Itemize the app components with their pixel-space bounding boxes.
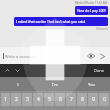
button[interactable]: 3 bbox=[22, 93, 32, 106]
button[interactable]: Attach bbox=[86, 51, 96, 61]
staticText: I bbox=[17, 82, 19, 87]
button[interactable]: 0 bbox=[99, 93, 109, 106]
staticText: Write a message... bbox=[5, 54, 40, 59]
button[interactable]: 5 bbox=[44, 93, 54, 106]
button[interactable]: Done bbox=[92, 67, 107, 74]
button[interactable]: Send bbox=[97, 51, 107, 61]
button[interactable]: How do I pay $20? bbox=[75, 6, 108, 15]
button[interactable]: 1 bbox=[1, 93, 10, 106]
staticText: Mitchell Harris 11:33 AM bbox=[75, 1, 108, 5]
staticText: 2 bbox=[15, 96, 18, 103]
button[interactable]: 4 bbox=[33, 93, 43, 106]
staticText: You bbox=[88, 82, 95, 87]
staticText: 8 bbox=[81, 96, 84, 103]
button[interactable]: I asked that earlier. That isn't what yo… bbox=[14, 17, 108, 26]
button[interactable]: Next bbox=[13, 66, 22, 75]
button[interactable]: I bbox=[0, 77, 36, 91]
button[interactable]: You bbox=[73, 77, 110, 91]
staticText: 7 bbox=[70, 96, 73, 103]
staticText: 0 bbox=[103, 96, 106, 103]
staticText: 9 bbox=[92, 96, 95, 103]
button[interactable]: 2 bbox=[11, 93, 21, 106]
button[interactable]: I'm bbox=[36, 77, 73, 91]
button[interactable]: Previous bbox=[3, 66, 12, 75]
staticText: I asked that earlier. That isn't what yo… bbox=[16, 19, 86, 24]
staticText: 4 bbox=[37, 96, 40, 103]
staticText: How do I pay $20? bbox=[77, 8, 106, 13]
button[interactable]: Write a message... bbox=[3, 53, 86, 59]
button[interactable]: 7 bbox=[66, 93, 76, 106]
staticText: I'm bbox=[52, 82, 58, 87]
staticText: 3 bbox=[26, 96, 29, 103]
staticText: 1 bbox=[4, 96, 7, 103]
button[interactable]: 9 bbox=[88, 93, 98, 106]
button[interactable]: 8 bbox=[77, 93, 87, 106]
button[interactable]: 6 bbox=[55, 93, 65, 106]
staticText: 5 bbox=[48, 96, 51, 103]
staticText: Delivered bbox=[96, 27, 108, 31]
staticText: Done bbox=[94, 68, 105, 73]
staticText: 6 bbox=[59, 96, 62, 103]
